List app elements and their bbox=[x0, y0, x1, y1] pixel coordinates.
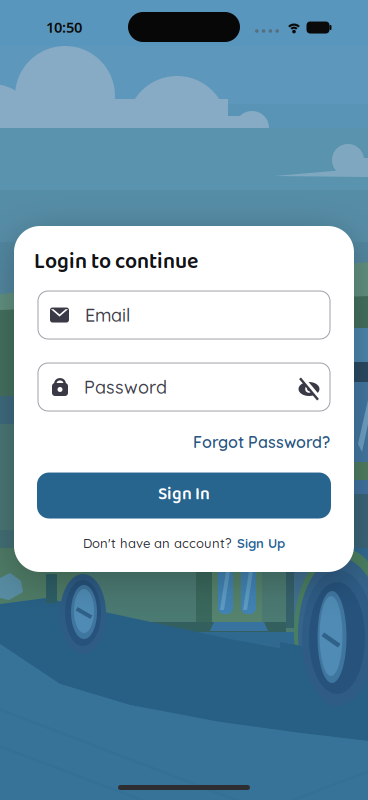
button[interactable]: Forgot Password? bbox=[193, 432, 330, 452]
staticText: Forgot Password? bbox=[193, 432, 330, 452]
button[interactable]: Sign In bbox=[37, 472, 331, 518]
staticText: Login to continue bbox=[34, 245, 198, 279]
staticText: 10:50 bbox=[46, 17, 82, 37]
staticText: Password bbox=[84, 376, 167, 398]
button[interactable]: Sign Up bbox=[237, 535, 285, 551]
staticText: Sign Up bbox=[237, 535, 285, 551]
button[interactable]: Show password bbox=[298, 377, 330, 397]
staticText: Don't have an account? bbox=[83, 535, 232, 551]
staticText: Sign In bbox=[158, 481, 210, 508]
button[interactable]: Email bbox=[38, 291, 330, 339]
button[interactable]: Password bbox=[38, 363, 330, 411]
staticText: Email bbox=[85, 304, 130, 326]
